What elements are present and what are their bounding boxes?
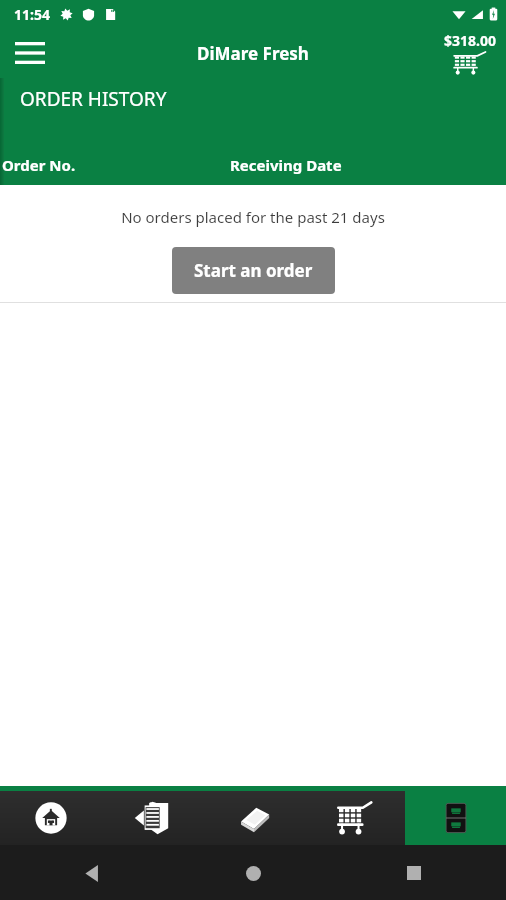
button[interactable]: Cart [304, 791, 405, 845]
button[interactable]: Catalog [203, 791, 304, 845]
staticText: 11:54 [14, 5, 50, 24]
staticText: No orders placed for the past 21 days [121, 207, 385, 227]
button[interactable]: Back [70, 851, 114, 895]
staticText: ORDER HISTORY [20, 86, 167, 112]
button[interactable]: Order guide [102, 791, 203, 845]
staticText: $318.00 [444, 31, 496, 50]
button[interactable]: Home [231, 851, 275, 895]
button[interactable]: Open navigation menu [6, 29, 54, 77]
staticText: Start an order [194, 259, 313, 282]
button[interactable]: Start an order [172, 247, 335, 294]
button[interactable]: Recent apps [392, 851, 436, 895]
staticText: Order No. [2, 155, 76, 175]
staticText: Receiving Date [230, 155, 342, 175]
button[interactable]: Cart, $318.00 [442, 31, 498, 75]
button[interactable]: Home [0, 791, 102, 845]
staticText: DiMare Fresh [197, 42, 309, 65]
button[interactable]: Order history [405, 791, 506, 845]
